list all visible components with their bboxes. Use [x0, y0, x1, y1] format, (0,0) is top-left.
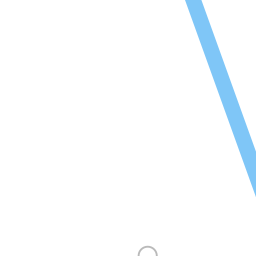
button[interactable]: Action: [139, 247, 157, 256]
